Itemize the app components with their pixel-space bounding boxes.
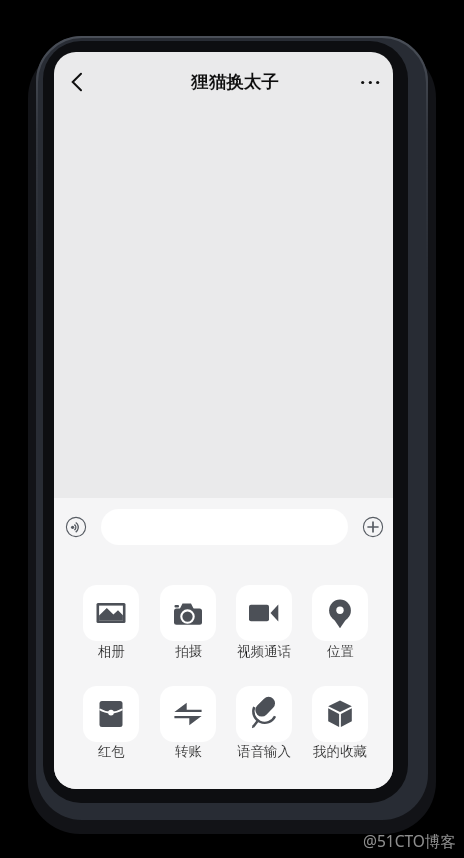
staticText: 红包	[98, 743, 125, 760]
button[interactable]	[160, 686, 216, 742]
staticText: @51CTO博客	[363, 830, 456, 851]
staticText: 转账	[175, 743, 202, 760]
staticText: 拍摄	[175, 643, 202, 660]
button[interactable]	[62, 72, 92, 94]
button[interactable]	[312, 686, 368, 742]
button[interactable]	[312, 585, 368, 641]
staticText: 我的收藏	[313, 743, 367, 760]
button[interactable]	[362, 516, 384, 538]
button[interactable]	[65, 516, 87, 538]
staticText: 狸猫换太子	[191, 71, 279, 93]
staticText: 相册	[98, 643, 125, 660]
button[interactable]	[83, 585, 139, 641]
button[interactable]	[83, 686, 139, 742]
button[interactable]	[236, 585, 292, 641]
button[interactable]	[160, 585, 216, 641]
staticText: 视频通话	[237, 643, 291, 660]
staticText: 位置	[327, 643, 354, 660]
button[interactable]	[350, 70, 390, 96]
staticText: 语音输入	[237, 743, 291, 760]
button[interactable]	[236, 686, 292, 742]
